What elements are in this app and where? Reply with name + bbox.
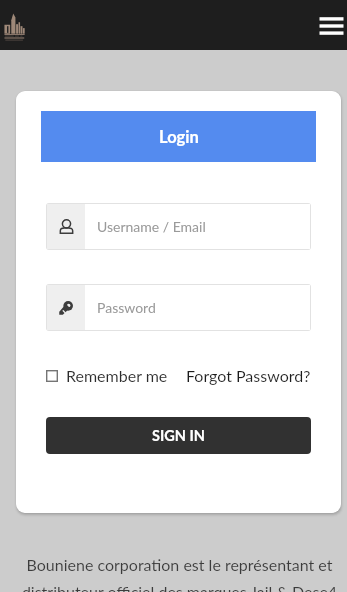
staticText: distributeur officiel des marques Jail &… — [6, 582, 347, 592]
button[interactable]: Bouniene home — [4, 13, 26, 41]
button[interactable]: Login — [41, 111, 316, 162]
staticText: SIGN IN — [152, 427, 205, 444]
button[interactable]: Forgot Password? — [186, 366, 311, 385]
button[interactable]: Menu — [311, 7, 347, 43]
staticText: Forgot Password? — [186, 366, 311, 385]
staticText: Login — [159, 127, 199, 147]
button[interactable]: Username / Email — [47, 204, 310, 249]
staticText: Remember me — [66, 366, 168, 385]
staticText: Bouniene corporation est le représentant… — [6, 555, 347, 574]
button[interactable]: Remember me — [46, 366, 168, 385]
button[interactable]: Password — [47, 285, 310, 330]
staticText: Password — [97, 299, 156, 316]
button[interactable]: SIGN IN — [46, 417, 311, 454]
staticText: Username / Email — [97, 218, 206, 235]
